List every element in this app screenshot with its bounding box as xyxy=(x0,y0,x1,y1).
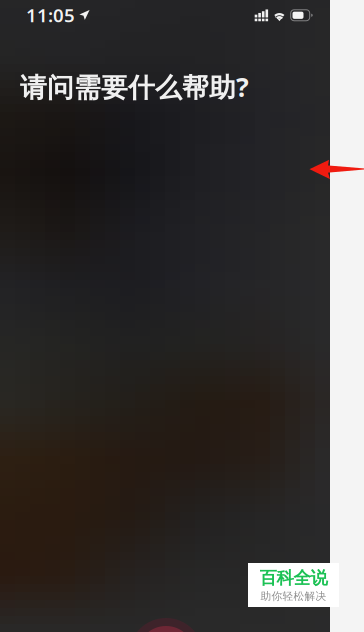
staticText: 11:05 xyxy=(26,3,75,27)
staticText: 百科全说 xyxy=(259,567,327,589)
button[interactable]: 请问需要什么帮助? xyxy=(0,30,249,104)
staticText: 助你轻松解决 xyxy=(260,590,326,603)
staticText: 请问需要什么帮助? xyxy=(20,69,249,104)
